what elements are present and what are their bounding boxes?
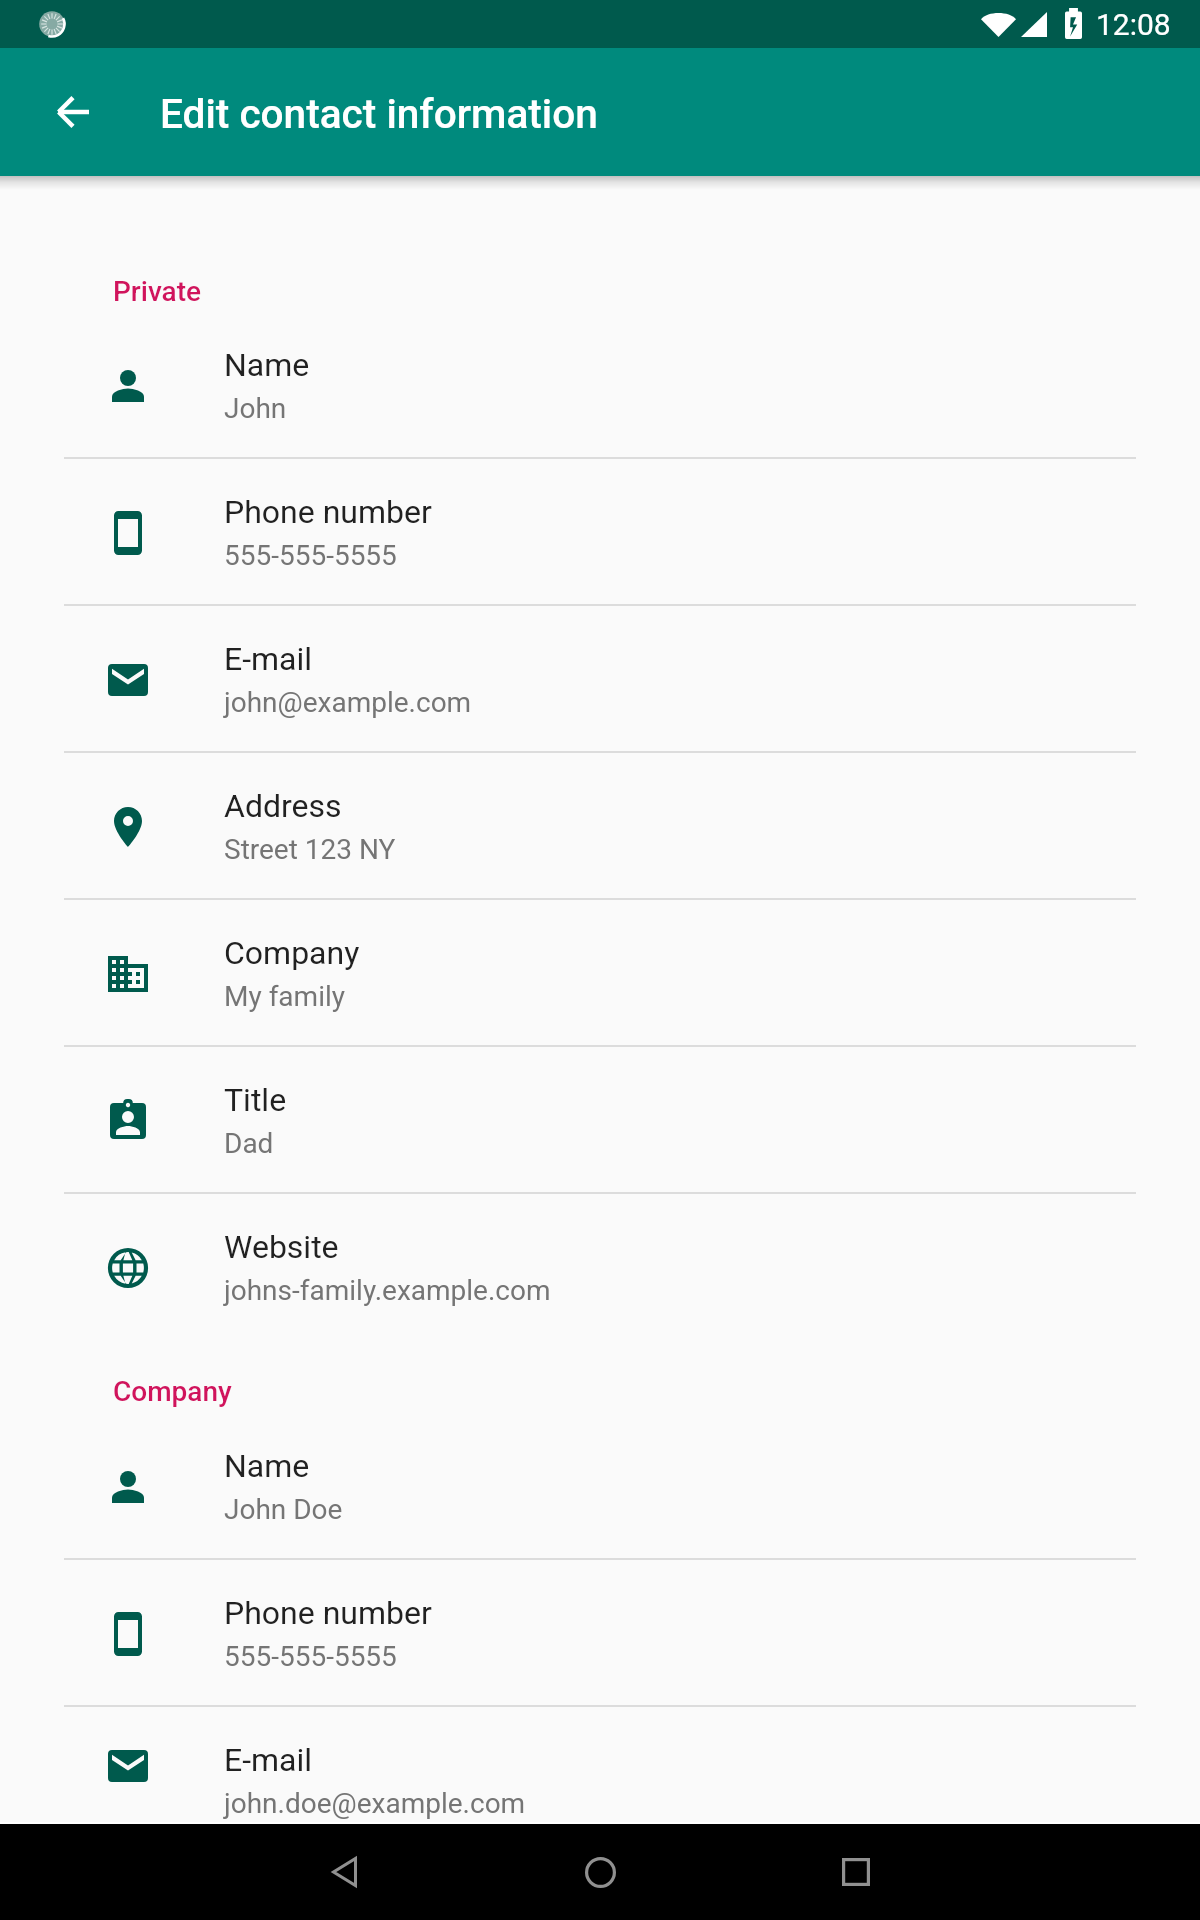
button[interactable]: Company (0, 900, 1200, 1047)
staticText: Phone number (224, 493, 432, 531)
staticText: Name (224, 346, 310, 384)
button[interactable]: Name (0, 312, 1200, 459)
staticText: Website (224, 1228, 339, 1266)
button[interactable]: Home (552, 1824, 648, 1920)
staticText: 12:08 (1096, 7, 1171, 42)
staticText: Dad (224, 1127, 274, 1160)
button[interactable]: Recent apps (808, 1824, 904, 1920)
staticText: johns-family.example.com (224, 1274, 551, 1307)
staticText: Phone number (224, 1594, 432, 1632)
button[interactable]: Name (0, 1413, 1200, 1560)
button[interactable]: E-mail (0, 1707, 1200, 1824)
staticText: Street 123 NY (224, 833, 396, 866)
staticText: E-mail (224, 1741, 313, 1779)
staticText: Private (113, 275, 202, 308)
staticText: 555-555-5555 (224, 539, 397, 572)
staticText: John (224, 392, 287, 425)
button[interactable]: Website (0, 1194, 1200, 1341)
staticText: Title (224, 1081, 287, 1119)
staticText: john.doe@example.com (224, 1787, 526, 1820)
button[interactable]: Back (296, 1824, 392, 1920)
staticText: My family (224, 980, 346, 1013)
staticText: john@example.com (224, 686, 472, 719)
button[interactable]: Title (0, 1047, 1200, 1194)
staticText: John Doe (224, 1493, 343, 1526)
button[interactable]: Address (0, 753, 1200, 900)
button[interactable]: Back (24, 64, 120, 160)
staticText: Company (224, 934, 360, 972)
staticText: Edit contact information (160, 90, 598, 138)
staticText: 555-555-5555 (224, 1640, 397, 1673)
button[interactable]: Phone number (0, 1560, 1200, 1707)
staticText: Name (224, 1447, 310, 1485)
button[interactable]: E-mail (0, 606, 1200, 753)
staticText: Company (113, 1375, 232, 1408)
button[interactable]: Phone number (0, 459, 1200, 606)
staticText: E-mail (224, 640, 313, 678)
staticText: Address (224, 787, 342, 825)
